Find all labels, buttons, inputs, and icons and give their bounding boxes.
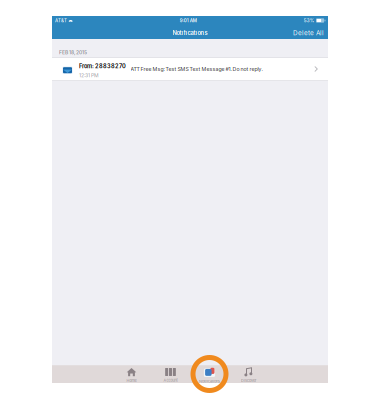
staticText: AT&T [55,18,67,23]
staticText: ATT Free Msg: Test SMS Text Message #1. … [130,66,262,72]
staticText: Home [126,378,136,383]
staticText: Account [163,378,177,383]
staticText: Notifications [172,29,207,36]
staticText: Discover [241,378,256,383]
button[interactable]: Account [151,365,190,383]
staticText: 12:31 PM [79,72,99,78]
staticText: Notifications [199,379,220,384]
button[interactable]: Delete All [289,25,328,39]
button[interactable]: Discover [229,365,268,383]
staticText: FEB 18, 2015 [59,49,87,55]
button[interactable]: Notifications [190,365,229,383]
staticText: From: 28838270 [79,63,126,70]
button[interactable]: Home [112,365,151,383]
staticText: Delete All [293,29,324,37]
staticText: 9:01 AM [180,18,197,23]
button[interactable]: From: 28838270 [52,58,328,80]
staticText: 53% [304,18,315,23]
